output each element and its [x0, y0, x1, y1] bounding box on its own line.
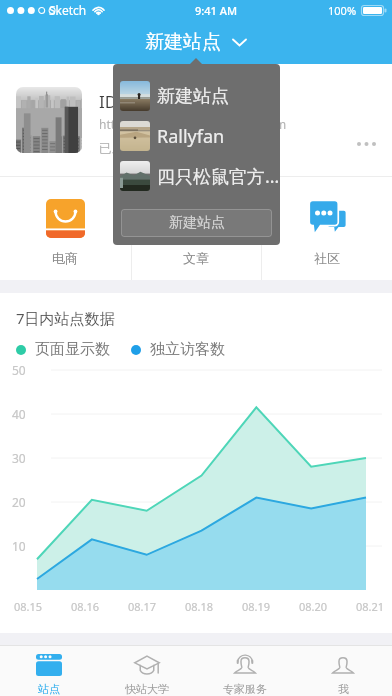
staticText: 专家服务: [223, 682, 267, 696]
staticText: 08.21: [356, 599, 385, 614]
staticText: 文章: [183, 250, 209, 266]
button[interactable]: More options: [348, 126, 384, 162]
staticText: 新建站点: [169, 214, 225, 232]
staticText: 20: [12, 494, 26, 510]
button[interactable]: ID站点: [0, 64, 392, 176]
button[interactable]: 新建站点: [121, 209, 272, 237]
staticText: 我: [338, 682, 349, 696]
button[interactable]: 快站大学: [98, 646, 196, 696]
staticText: Sketch: [49, 2, 87, 18]
staticText: Rallyfan: [157, 124, 225, 149]
staticText: 四只松鼠官方…: [157, 164, 280, 189]
staticText: 08.19: [242, 599, 271, 614]
staticText: 30: [12, 450, 26, 466]
button[interactable]: 专家服务: [196, 646, 294, 696]
button[interactable]: 四只松鼠官方…: [113, 156, 280, 196]
staticText: 独立访客数: [150, 340, 225, 359]
staticText: 新建站点: [145, 30, 221, 54]
button[interactable]: 电商: [0, 177, 130, 266]
button[interactable]: 社区: [261, 177, 392, 266]
staticText: 08.17: [128, 599, 157, 614]
staticText: 08.20: [299, 599, 328, 614]
staticText: 快站大学: [125, 682, 169, 696]
button[interactable]: 新建站点: [133, 24, 259, 60]
button[interactable]: 新建站点: [113, 76, 280, 116]
staticText: ID站点: [99, 90, 152, 113]
staticText: 08.16: [71, 599, 100, 614]
button[interactable]: 站点: [0, 646, 98, 696]
staticText: 电商: [52, 250, 78, 266]
staticText: 9:41 AM: [195, 3, 238, 18]
button[interactable]: Rallyfan: [113, 116, 280, 156]
staticText: 站点: [38, 682, 60, 696]
staticText: 7日内站点数据: [16, 308, 115, 328]
staticText: 08.18: [185, 599, 214, 614]
button[interactable]: 我: [294, 646, 392, 696]
staticText: http://ziwzhandian.kuaizhan.com: [99, 116, 287, 132]
button[interactable]: 文章: [130, 177, 261, 266]
staticText: 100%: [328, 3, 357, 18]
staticText: 已发布: [99, 140, 138, 156]
staticText: 10: [12, 538, 26, 554]
staticText: 社区: [314, 250, 340, 266]
staticText: 页面显示数: [35, 340, 110, 359]
staticText: 50: [12, 362, 26, 378]
staticText: 新建站点: [157, 85, 229, 108]
staticText: 08.15: [14, 599, 43, 614]
staticText: 40: [12, 406, 26, 422]
